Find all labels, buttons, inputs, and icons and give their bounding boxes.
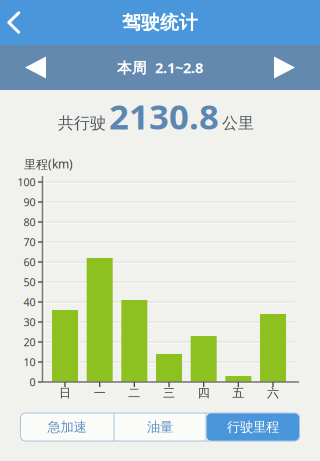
staticText: 一: [94, 386, 106, 400]
button[interactable]: Previous week: [0, 45, 71, 90]
staticText: 里程(km): [24, 156, 73, 172]
staticText: 70: [23, 235, 35, 249]
staticText: 二: [128, 386, 140, 400]
staticText: 四: [198, 386, 210, 400]
staticText: 0: [29, 375, 35, 389]
button[interactable]: 急加速: [20, 413, 113, 441]
staticText: 行驶里程: [227, 419, 279, 435]
staticText: 共行驶: [58, 113, 106, 133]
button[interactable]: Next week: [249, 45, 320, 90]
staticText: 油量: [147, 419, 173, 435]
staticText: 80: [23, 215, 35, 229]
staticText: 30: [23, 315, 35, 329]
staticText: 日: [59, 386, 71, 400]
staticText: 本周 2.1~2.8: [117, 58, 203, 77]
staticText: 40: [23, 295, 35, 309]
staticText: 驾驶统计: [122, 11, 198, 34]
staticText: 2130.8: [109, 93, 219, 139]
staticText: 六: [267, 386, 279, 400]
staticText: 三: [163, 386, 175, 400]
button[interactable]: 行驶里程: [206, 413, 299, 441]
staticText: 五: [232, 386, 244, 400]
staticText: 10: [23, 355, 35, 369]
staticText: 100: [17, 175, 35, 189]
staticText: 60: [23, 255, 35, 269]
staticText: 50: [23, 275, 35, 289]
staticText: 90: [23, 195, 35, 209]
staticText: 20: [23, 335, 35, 349]
staticText: 急加速: [47, 419, 86, 435]
button[interactable]: Back: [0, 0, 44, 45]
staticText: 公里: [222, 113, 254, 133]
button[interactable]: 油量: [113, 413, 206, 441]
